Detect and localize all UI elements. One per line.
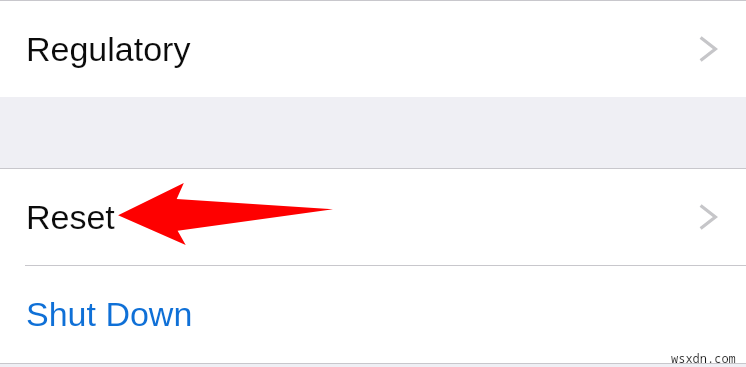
button[interactable]: Open <box>685 26 731 72</box>
button[interactable]: Regulatory <box>0 1 746 97</box>
staticText: Reset <box>26 198 115 236</box>
button[interactable]: Shut Down <box>0 266 746 363</box>
button[interactable]: Reset <box>0 169 746 265</box>
button[interactable]: Open <box>685 194 731 240</box>
staticText: Shut Down <box>26 295 193 333</box>
staticText: Regulatory <box>26 30 191 68</box>
staticText: wsxdn.com <box>671 350 736 366</box>
